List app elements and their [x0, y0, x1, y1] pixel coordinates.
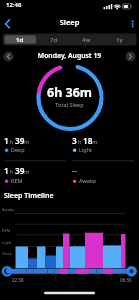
- button[interactable]: [0, 14, 20, 34]
- staticText: Awake: [2, 207, 15, 212]
- staticText: --: [72, 165, 78, 176]
- button[interactable]: 1 h 39m: [4, 135, 30, 146]
- staticText: Deep: [11, 146, 25, 153]
- staticText: 6h 36m: [0, 84, 139, 101]
- staticText: REM: [11, 177, 23, 184]
- staticText: 06:36: [120, 277, 132, 283]
- button[interactable]: 1y: [0, 0, 7, 8]
- button[interactable]: 1 h 39m: [4, 165, 30, 176]
- button[interactable]: 4w: [0, 0, 9, 8]
- staticText: 12:46: [6, 1, 22, 9]
- button[interactable]: 7d: [0, 0, 8, 8]
- button[interactable]: 1d: [0, 0, 8, 8]
- staticText: Light: [79, 146, 93, 153]
- button[interactable]: [2, 50, 15, 63]
- button[interactable]: [124, 50, 137, 63]
- staticText: REM: [2, 228, 11, 233]
- staticText: Total Sleep: [0, 101, 139, 109]
- staticText: Monday, August 19: [0, 51, 139, 60]
- button[interactable]: 3 h 18m: [72, 135, 98, 146]
- staticText: Sleep Timeline: [4, 191, 54, 201]
- staticText: Deep: [2, 251, 12, 256]
- staticText: Awake: [79, 177, 96, 184]
- staticText: Light: [2, 240, 12, 245]
- button[interactable]: [122, 14, 139, 34]
- staticText: 22:38: [12, 277, 24, 283]
- staticText: Sleep: [0, 17, 139, 27]
